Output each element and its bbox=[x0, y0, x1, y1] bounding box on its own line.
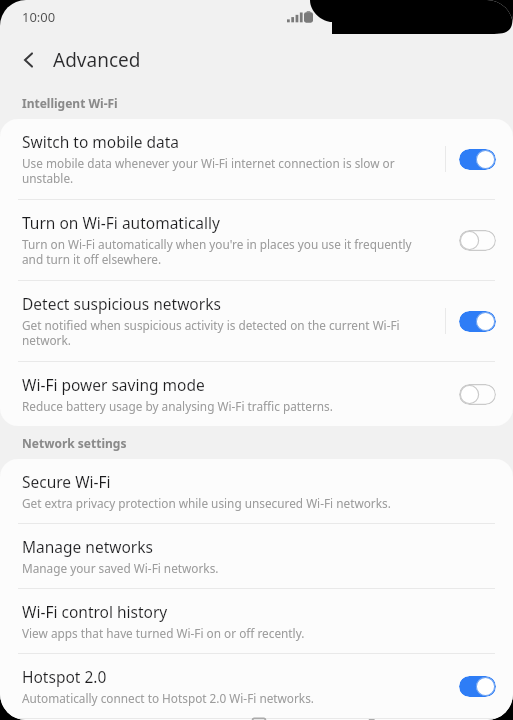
staticText: Switch to mobile data bbox=[22, 131, 180, 152]
button[interactable]: Switch off bbox=[459, 230, 496, 251]
staticText: 10:00 bbox=[22, 8, 56, 26]
staticText: Turn on Wi-Fi automatically bbox=[22, 212, 220, 233]
staticText: Secure Wi-Fi bbox=[22, 471, 111, 492]
button[interactable]: Secure Wi-Fi bbox=[0, 459, 513, 523]
staticText: Wi-Fi power saving mode bbox=[22, 374, 205, 395]
button[interactable]: Switch to mobile data bbox=[0, 119, 513, 199]
button[interactable]: Switch on bbox=[459, 149, 496, 170]
staticText: Turn on Wi-Fi automatically when you're … bbox=[22, 236, 435, 268]
button[interactable]: Switch off bbox=[459, 384, 496, 405]
staticText: Automatically connect to Hotspot 2.0 Wi-… bbox=[22, 690, 314, 706]
button[interactable]: Hotspot 2.0 bbox=[0, 654, 513, 718]
button[interactable]: Switch on bbox=[459, 676, 496, 697]
button[interactable]: Switch on bbox=[459, 311, 496, 332]
button[interactable]: Navigate up bbox=[8, 39, 50, 81]
button[interactable]: Wi-Fi power saving mode bbox=[0, 362, 513, 426]
staticText: Manage your saved Wi-Fi networks. bbox=[22, 560, 219, 576]
staticText: Network settings bbox=[22, 435, 127, 451]
staticText: Hotspot 2.0 bbox=[22, 666, 107, 687]
staticText: Get extra privacy protection while using… bbox=[22, 495, 391, 511]
staticText: Reduce battery usage by analysing Wi-Fi … bbox=[22, 398, 333, 414]
staticText: Get notified when suspicious activity is… bbox=[22, 317, 435, 349]
button[interactable]: Detect suspicious networks bbox=[0, 281, 513, 361]
button[interactable]: Manage networks bbox=[0, 524, 513, 588]
staticText: Detect suspicious networks bbox=[22, 293, 221, 314]
staticText: Advanced bbox=[53, 47, 141, 73]
staticText: Manage networks bbox=[22, 536, 153, 557]
button[interactable]: Turn on Wi-Fi automatically bbox=[0, 200, 513, 280]
staticText: View apps that have turned Wi-Fi on or o… bbox=[22, 625, 305, 641]
button[interactable]: Wi-Fi control history bbox=[0, 589, 513, 653]
staticText: Wi-Fi control history bbox=[22, 601, 168, 622]
staticText: Use mobile data whenever your Wi-Fi inte… bbox=[22, 155, 435, 187]
staticText: Intelligent Wi-Fi bbox=[22, 95, 118, 111]
